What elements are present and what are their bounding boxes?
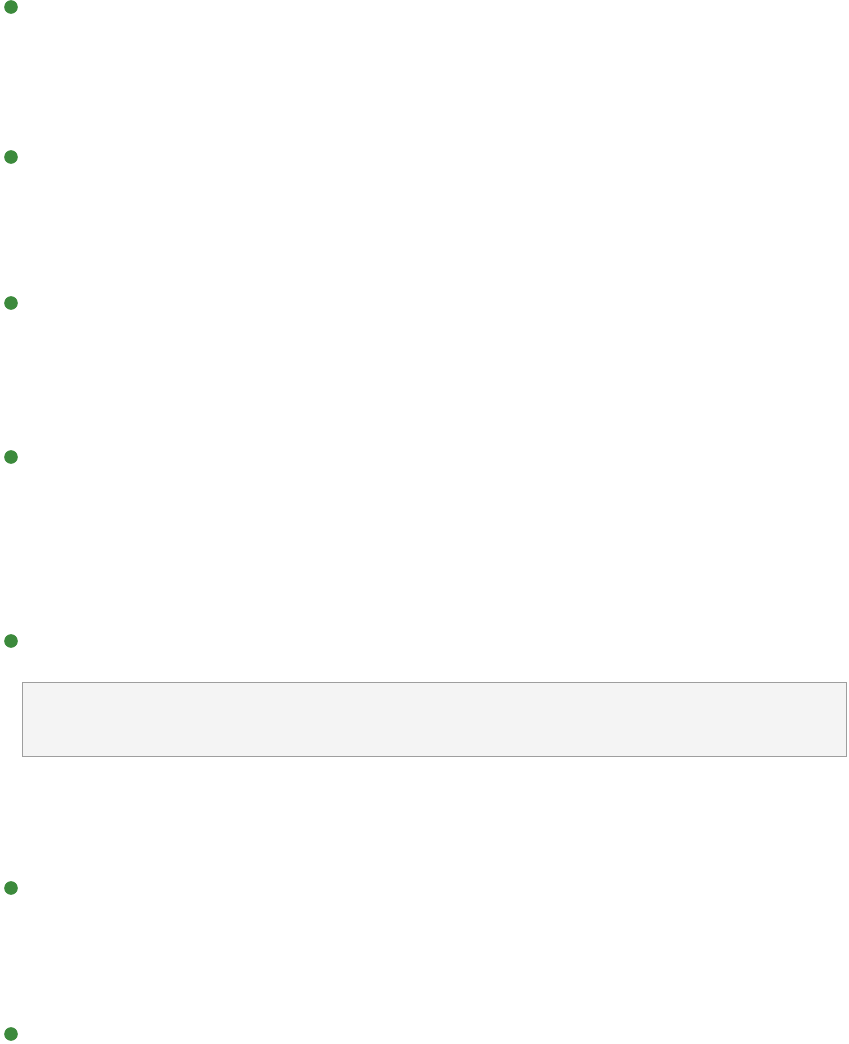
- button[interactable]: Section 5: [0, 631, 849, 651]
- button[interactable]: List item 7: [4, 1027, 18, 1041]
- button[interactable]: Section 4: [0, 447, 849, 467]
- button[interactable]: List item 1: [4, 0, 18, 14]
- button[interactable]: Section 2: [0, 147, 849, 167]
- button[interactable]: List item 2: [4, 150, 18, 164]
- button[interactable]: List item 6: [4, 881, 18, 895]
- button[interactable]: Section 3: [0, 293, 849, 313]
- button[interactable]: Section 6: [0, 878, 849, 898]
- button[interactable]: List item 5: [4, 634, 18, 648]
- button[interactable]: Section 7: [0, 1024, 849, 1044]
- button[interactable]: List item 4: [4, 450, 18, 464]
- button[interactable]: Section 1: [0, 0, 849, 20]
- button[interactable]: List item 3: [4, 296, 18, 310]
- button[interactable]: Text input field: [22, 682, 847, 757]
